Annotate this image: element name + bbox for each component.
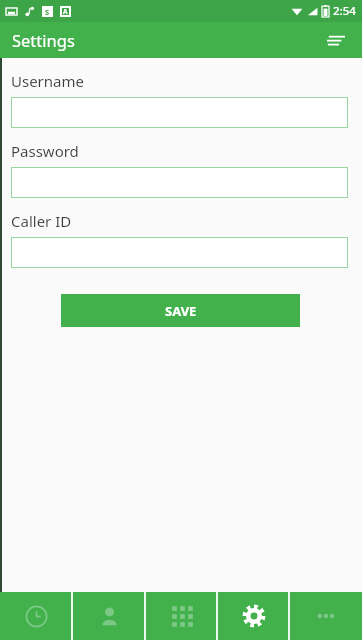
button[interactable]: SAVE [61, 294, 300, 327]
staticText: Settings [12, 29, 75, 51]
staticText: A [63, 7, 68, 16]
staticText: S [45, 7, 50, 17]
button[interactable]: Dialpad [146, 592, 218, 640]
staticText: 2:54 [333, 3, 356, 19]
button[interactable]: Settings [218, 592, 290, 640]
button[interactable] [11, 237, 348, 268]
staticText: Password [11, 141, 79, 161]
button[interactable]: Menu [320, 24, 352, 56]
button[interactable]: Recents [0, 592, 73, 640]
button[interactable]: Contacts [73, 592, 146, 640]
staticText: Username [11, 71, 84, 91]
button[interactable] [11, 97, 348, 128]
button[interactable]: More [290, 592, 362, 640]
staticText: SAVE [165, 302, 197, 320]
staticText: Caller ID [11, 211, 72, 231]
button[interactable] [11, 167, 348, 198]
